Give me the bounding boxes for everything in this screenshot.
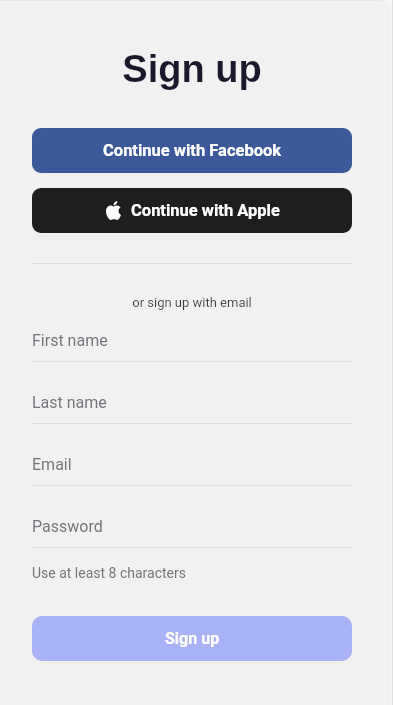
staticText: Email [32,455,72,474]
staticText: First name [32,331,108,350]
button[interactable]: Apple [32,188,352,233]
button[interactable]: Continue with Facebook [32,128,352,173]
button[interactable]: Email [32,455,352,500]
staticText: Continue with Apple [131,201,280,220]
button[interactable]: Password [32,517,352,562]
button[interactable]: First name [32,331,352,376]
staticText: Continue with Facebook [103,141,282,160]
staticText: Sign up [122,48,262,90]
staticText: Password [32,517,103,536]
button[interactable]: Sign up [32,616,352,661]
staticText: Last name [32,393,107,412]
staticText: Use at least 8 characters [32,565,186,581]
staticText: or sign up with email [132,295,252,310]
button[interactable]: Last name [32,393,352,438]
other: Apple [106,201,121,220]
staticText: Sign up [165,629,220,648]
